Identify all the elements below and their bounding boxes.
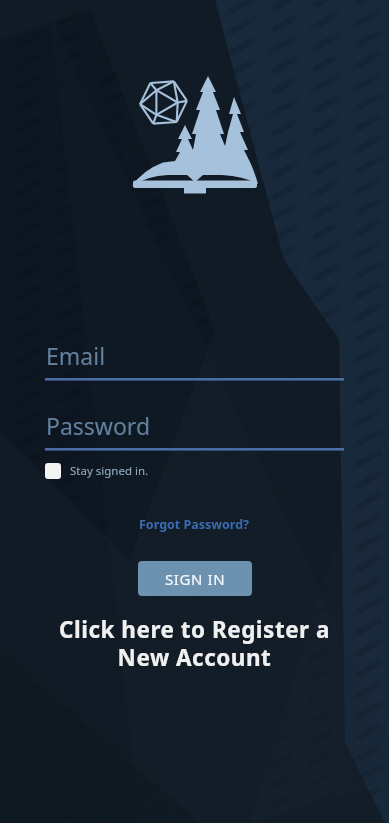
button[interactable]: Click here to Register a New Account bbox=[0, 614, 389, 672]
staticText: Email bbox=[46, 340, 106, 371]
staticText: Click here to Register a New Account bbox=[59, 614, 330, 672]
button[interactable]: Forgot Password? bbox=[139, 516, 250, 533]
button[interactable]: Stay signed in. bbox=[45, 463, 149, 479]
staticText: Password bbox=[46, 410, 151, 441]
staticText: Stay signed in. bbox=[70, 463, 149, 479]
button[interactable]: SIGN IN bbox=[138, 561, 252, 596]
staticText: SIGN IN bbox=[165, 569, 226, 589]
